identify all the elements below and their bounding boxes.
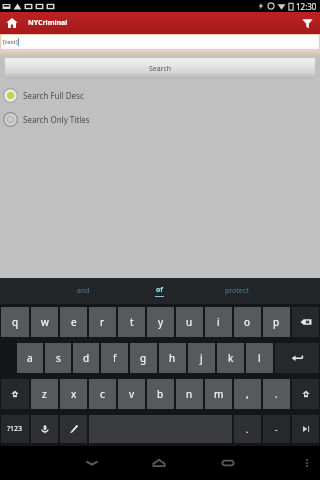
staticText: [text]: [3, 38, 18, 46]
staticText: NYCriminal: [28, 18, 68, 28]
button[interactable]: u: [176, 307, 203, 337]
button[interactable]: m: [205, 379, 232, 409]
staticText: c: [100, 387, 105, 401]
staticText: z: [42, 387, 47, 401]
button[interactable]: a: [17, 343, 43, 373]
button[interactable]: [text]: [0, 34, 320, 58]
button[interactable]: w: [31, 307, 58, 337]
button[interactable]: o: [234, 307, 261, 337]
button[interactable]: Voice input: [31, 415, 58, 443]
staticText: p: [273, 315, 280, 329]
staticText: o: [244, 315, 251, 329]
staticText: j: [200, 351, 203, 365]
button[interactable]: d: [73, 343, 99, 373]
staticText: b: [157, 387, 164, 401]
button[interactable]: s: [45, 343, 71, 373]
button[interactable]: Home: [4, 15, 20, 31]
staticText: .: [275, 387, 278, 401]
button[interactable]: z: [31, 379, 58, 409]
staticText: Search Full Desc: [23, 90, 84, 101]
staticText: s: [56, 351, 61, 365]
button[interactable]: h: [159, 343, 186, 373]
staticText: n: [186, 387, 193, 401]
button[interactable]: of: [121, 278, 198, 304]
staticText: Search: [149, 64, 172, 74]
button[interactable]: k: [217, 343, 244, 373]
staticText: v: [129, 387, 135, 401]
button[interactable]: g: [130, 343, 157, 373]
staticText: k: [228, 351, 234, 365]
button[interactable]: j: [188, 343, 215, 373]
button[interactable]: Search Only Titles: [0, 107, 320, 131]
button[interactable]: Recents: [211, 446, 245, 480]
staticText: u: [186, 315, 193, 329]
staticText: f: [113, 351, 117, 365]
button[interactable]: Home: [0, 12, 320, 34]
button[interactable]: Shift: [1, 379, 29, 409]
button[interactable]: ?123: [1, 415, 29, 443]
button[interactable]: .: [263, 379, 290, 409]
staticText: ?123: [7, 424, 23, 434]
staticText: d: [83, 351, 90, 365]
staticText: and: [77, 286, 90, 296]
button[interactable]: -: [263, 415, 290, 443]
button[interactable]: Search: [5, 58, 315, 79]
button[interactable]: More options: [294, 450, 320, 476]
button[interactable]: Enter: [275, 343, 319, 373]
button[interactable]: Home: [142, 446, 176, 480]
button[interactable]: q: [1, 307, 29, 337]
staticText: 12:30: [296, 1, 317, 12]
button[interactable]: c: [89, 379, 116, 409]
button[interactable]: y: [147, 307, 174, 337]
staticText: r: [100, 315, 105, 329]
staticText: t: [130, 315, 134, 329]
staticText: h: [169, 351, 176, 365]
button[interactable]: p: [263, 307, 290, 337]
button[interactable]: Handwriting: [60, 415, 87, 443]
button[interactable]: Search Full Desc: [0, 83, 320, 107]
button[interactable]: n: [176, 379, 203, 409]
staticText: -: [275, 424, 278, 435]
button[interactable]: i: [205, 307, 232, 337]
staticText: l: [258, 351, 261, 365]
staticText: g: [140, 351, 147, 365]
staticText: i: [217, 315, 220, 329]
staticText: e: [71, 315, 77, 329]
button[interactable]: v: [118, 379, 145, 409]
button[interactable]: x: [60, 379, 87, 409]
button[interactable]: e: [60, 307, 87, 337]
button[interactable]: Next: [292, 415, 319, 443]
button[interactable]: ,: [234, 379, 261, 409]
staticText: w: [41, 315, 49, 329]
staticText: ,: [246, 387, 249, 401]
button[interactable]: Backspace: [292, 307, 319, 337]
staticText: m: [214, 387, 224, 401]
button[interactable]: Shift: [292, 379, 319, 409]
staticText: Search Only Titles: [23, 114, 90, 125]
staticText: of: [156, 285, 164, 295]
button[interactable]: r: [89, 307, 116, 337]
button[interactable]: t: [118, 307, 145, 337]
button[interactable]: Hide keyboard: [75, 446, 109, 480]
staticText: .: [246, 424, 249, 435]
button[interactable]: f: [101, 343, 128, 373]
staticText: y: [158, 315, 164, 329]
button[interactable]: l: [246, 343, 273, 373]
staticText: a: [27, 351, 33, 365]
button[interactable]: b: [147, 379, 174, 409]
button[interactable]: .: [234, 415, 261, 443]
staticText: q: [12, 315, 19, 329]
staticText: protect: [225, 286, 249, 296]
button[interactable]: protect: [198, 278, 275, 304]
button[interactable]: and: [45, 278, 121, 304]
button[interactable]: Filter: [296, 12, 318, 34]
staticText: x: [71, 387, 77, 401]
